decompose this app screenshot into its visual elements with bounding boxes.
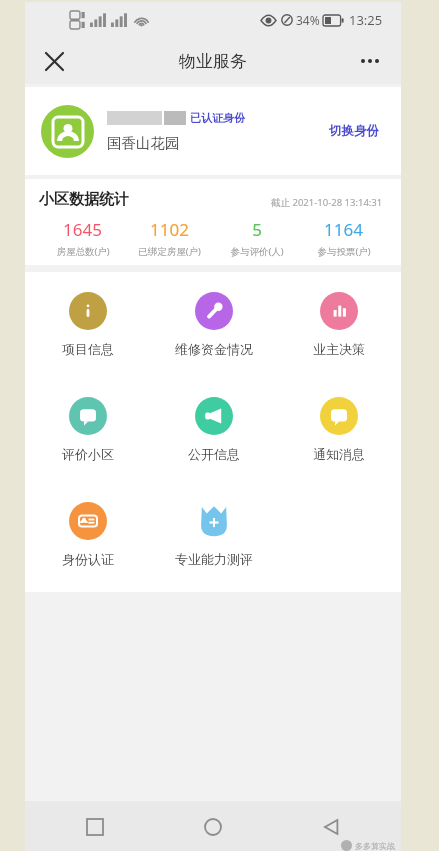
staticText: 切换身份 — [329, 123, 379, 139]
staticText: 物业服务 — [179, 51, 247, 72]
staticText: 公开信息 — [188, 446, 240, 462]
staticText: 业主决策 — [313, 341, 365, 357]
button[interactable]: 身份认证 — [25, 500, 151, 569]
button[interactable]: Back — [309, 805, 353, 849]
button[interactable]: 5 — [213, 218, 300, 258]
staticText: 小区数据统计 — [39, 190, 129, 209]
button[interactable]: 1164 — [300, 218, 387, 258]
button[interactable]: 专业能力测评 — [151, 500, 276, 569]
staticText: 房屋总数(户) — [56, 245, 110, 258]
button[interactable]: More options — [349, 40, 391, 82]
staticText: 专业能力测评 — [175, 551, 253, 567]
staticText: 项目信息 — [62, 341, 114, 357]
staticText: 13:25 — [349, 11, 383, 29]
button[interactable]: 切换身份 — [323, 117, 385, 145]
staticText: 1164 — [324, 218, 363, 241]
button[interactable]: Close — [33, 40, 75, 82]
staticText: 维修资金情况 — [175, 341, 253, 357]
staticText: 参与评价(人) — [230, 245, 284, 258]
staticText: 参与投票(户) — [317, 245, 371, 258]
staticText: 已认证身份 — [190, 111, 245, 125]
button[interactable]: 评价小区 — [25, 395, 151, 464]
button[interactable]: 公开信息 — [151, 395, 276, 464]
button[interactable]: Recent apps — [73, 805, 117, 849]
staticText: 通知消息 — [313, 446, 365, 462]
button[interactable]: 1645 — [39, 218, 126, 258]
staticText: 已绑定房屋(户) — [138, 245, 201, 258]
button[interactable]: Home — [191, 805, 235, 849]
staticText: 1645 — [63, 218, 102, 241]
button[interactable]: 1102 — [126, 218, 213, 258]
button[interactable]: 项目信息 — [25, 290, 151, 359]
button[interactable]: 已认证身份 — [25, 87, 401, 175]
button[interactable]: 维修资金情况 — [151, 290, 276, 359]
staticText: 评价小区 — [62, 446, 114, 462]
staticText: 多多算实战 — [355, 841, 395, 851]
staticText: 1102 — [150, 218, 189, 241]
button[interactable]: 通知消息 — [276, 395, 401, 464]
staticText: 34% — [296, 12, 320, 28]
button[interactable]: 业主决策 — [276, 290, 401, 359]
staticText: 截止 2021-10-28 13:14:31 — [271, 196, 383, 209]
staticText: 国香山花园 — [107, 134, 180, 152]
staticText: 5 — [252, 218, 262, 241]
staticText: 身份认证 — [62, 551, 114, 567]
